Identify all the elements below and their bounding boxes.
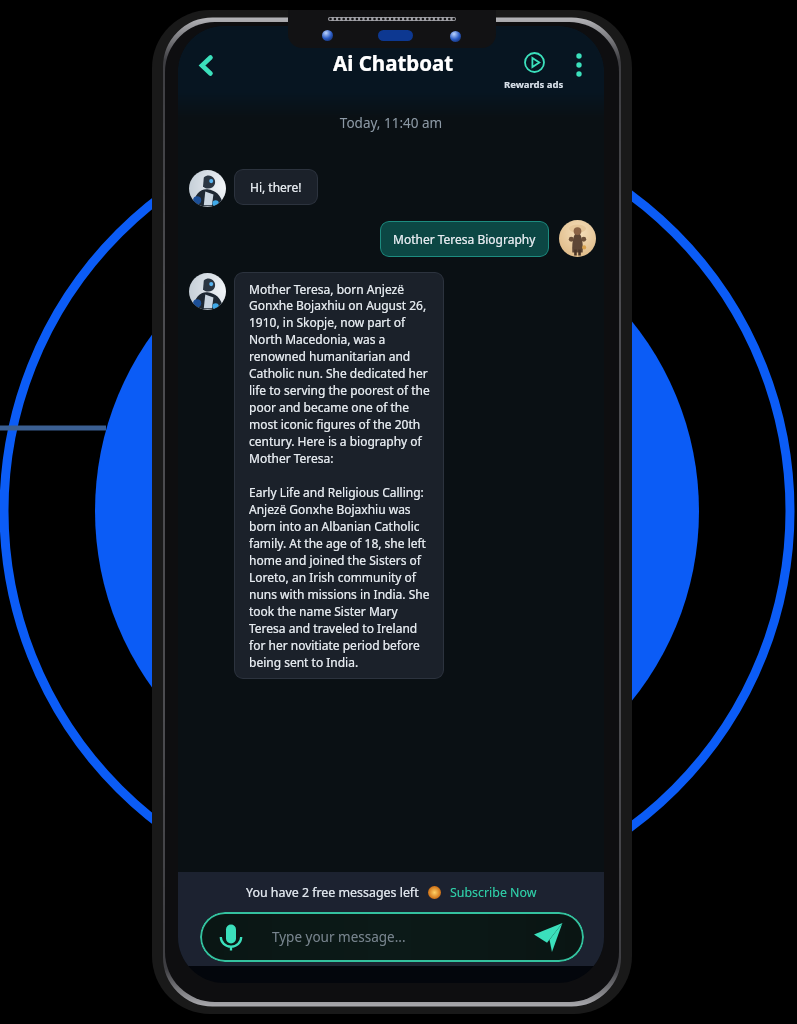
staticText: Ai Chatboat [333,49,454,77]
button[interactable]: Voice input [220,923,242,951]
staticText: Mother Teresa, born Anjezë Gonxhe Bojaxh… [249,281,430,670]
staticText: You have 2 free messages left [246,884,419,901]
button[interactable]: More options [567,52,591,76]
button[interactable]: Hi, there! [234,169,318,205]
button[interactable]: Send [533,922,563,952]
button[interactable]: Back [184,43,228,87]
button[interactable]: Rewards ads [504,52,564,100]
button[interactable]: Voice input [200,912,584,962]
staticText: Subscribe Now [450,884,537,901]
staticText: Today, 11:40 am [178,114,604,132]
button[interactable]: Mother Teresa Biography [380,221,549,257]
staticText: Mother Teresa Biography [393,231,536,247]
staticText: Rewards ads [504,78,564,91]
button[interactable]: Mother Teresa, born Anjezë Gonxhe Bojaxh… [234,272,444,679]
button[interactable]: Subscribe Now [450,884,537,901]
staticText: Hi, there! [250,179,302,195]
staticText: Type your message... [272,928,406,946]
